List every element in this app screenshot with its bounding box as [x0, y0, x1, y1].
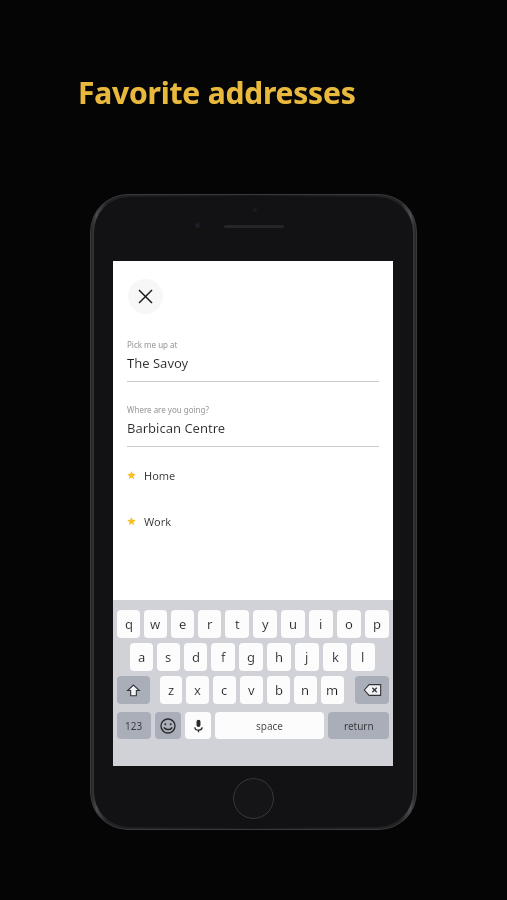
staticText: u: [289, 615, 298, 633]
staticText: t: [235, 615, 240, 633]
button[interactable]: i: [309, 610, 333, 638]
staticText: Work: [144, 514, 172, 529]
button[interactable]: m: [321, 676, 344, 704]
button[interactable]: return: [328, 712, 389, 739]
button[interactable]: space: [215, 712, 324, 739]
staticText: c: [221, 681, 228, 699]
staticText: q: [125, 615, 133, 633]
button[interactable]: Emoji: [155, 712, 181, 739]
staticText: n: [301, 681, 310, 699]
staticText: The Savoy: [127, 354, 189, 372]
staticText: z: [168, 681, 175, 699]
staticText: Where are you going?: [127, 404, 209, 415]
staticText: s: [165, 648, 172, 666]
button[interactable]: Backspace: [355, 676, 389, 704]
staticText: l: [361, 648, 365, 666]
button[interactable]: p: [365, 610, 389, 638]
staticText: Favorite addresses: [78, 72, 356, 113]
button[interactable]: y: [253, 610, 277, 638]
button[interactable]: w: [144, 610, 167, 638]
button[interactable]: Shift: [117, 676, 150, 704]
staticText: i: [319, 615, 323, 633]
staticText: space: [256, 719, 283, 733]
staticText: return: [344, 719, 374, 733]
button[interactable]: g: [239, 643, 263, 671]
button[interactable]: 123: [117, 712, 151, 739]
button[interactable]: c: [213, 676, 236, 704]
button[interactable]: f: [211, 643, 235, 671]
staticText: Pick me up at: [127, 339, 178, 350]
button[interactable]: u: [281, 610, 305, 638]
button[interactable]: v: [240, 676, 263, 704]
button[interactable]: l: [351, 643, 375, 671]
staticText: d: [192, 648, 200, 666]
button[interactable]: x: [186, 676, 209, 704]
staticText: g: [247, 648, 255, 666]
button[interactable]: b: [267, 676, 290, 704]
button[interactable]: o: [337, 610, 361, 638]
staticText: 123: [125, 719, 143, 733]
staticText: f: [221, 648, 226, 666]
button[interactable]: q: [117, 610, 140, 638]
staticText: o: [345, 615, 353, 633]
staticText: x: [194, 681, 201, 699]
button[interactable]: e: [171, 610, 194, 638]
button[interactable]: t: [225, 610, 249, 638]
staticText: Home: [144, 468, 176, 483]
button[interactable]: Dictate: [185, 712, 211, 739]
staticText: j: [305, 648, 309, 666]
button[interactable]: r: [198, 610, 221, 638]
button[interactable]: d: [184, 643, 207, 671]
staticText: b: [275, 681, 283, 699]
staticText: p: [373, 615, 381, 633]
button[interactable]: Close: [128, 279, 163, 314]
staticText: e: [179, 615, 187, 633]
staticText: v: [248, 681, 255, 699]
button[interactable]: a: [130, 643, 153, 671]
button[interactable]: h: [267, 643, 291, 671]
staticText: h: [275, 648, 284, 666]
staticText: y: [262, 615, 269, 633]
button[interactable]: n: [294, 676, 317, 704]
staticText: w: [150, 615, 161, 633]
staticText: Barbican Centre: [127, 419, 226, 437]
staticText: k: [332, 648, 339, 666]
button[interactable]: j: [295, 643, 319, 671]
staticText: a: [138, 648, 146, 666]
button[interactable]: Home: [113, 463, 393, 487]
button[interactable]: s: [157, 643, 180, 671]
button[interactable]: Home button: [233, 778, 274, 819]
button[interactable]: Work: [113, 509, 393, 533]
button[interactable]: z: [160, 676, 182, 704]
staticText: m: [326, 681, 339, 699]
staticText: r: [207, 615, 213, 633]
button[interactable]: k: [323, 643, 347, 671]
